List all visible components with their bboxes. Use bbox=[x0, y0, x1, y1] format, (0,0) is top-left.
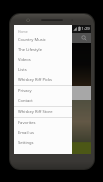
button[interactable]: Favorites bbox=[14, 118, 72, 128]
button[interactable]: Search bbox=[80, 34, 88, 42]
button[interactable]: Whiskey Riff Store bbox=[14, 107, 72, 117]
button[interactable]: Lists bbox=[14, 65, 72, 75]
button[interactable]: Country Music bbox=[14, 35, 72, 45]
staticText: Whiskey Riff Store bbox=[18, 109, 53, 115]
staticText: Country Music bbox=[18, 37, 46, 43]
button[interactable]: The Lifestyle bbox=[14, 45, 72, 55]
staticText: 11:29 bbox=[79, 26, 90, 32]
button[interactable]: Contact bbox=[14, 96, 72, 106]
staticText: Lists bbox=[18, 67, 27, 73]
staticText: The Lifestyle bbox=[18, 47, 42, 53]
button[interactable]: Settings bbox=[14, 138, 72, 148]
staticText: Home bbox=[18, 29, 28, 34]
button[interactable]: Videos bbox=[14, 55, 72, 65]
button[interactable]: Email us bbox=[14, 128, 72, 138]
staticText: Email us bbox=[18, 130, 35, 136]
button[interactable]: Privacy bbox=[14, 86, 72, 96]
staticText: Whiskey Riff Picks bbox=[18, 77, 53, 83]
staticText: Favorites bbox=[18, 120, 36, 126]
staticText: Settings bbox=[18, 140, 34, 146]
staticText: Privacy bbox=[18, 88, 32, 94]
button[interactable]: Whiskey Riff Picks bbox=[14, 75, 72, 85]
staticText: Videos bbox=[18, 57, 31, 63]
staticText: Contact bbox=[18, 98, 33, 104]
